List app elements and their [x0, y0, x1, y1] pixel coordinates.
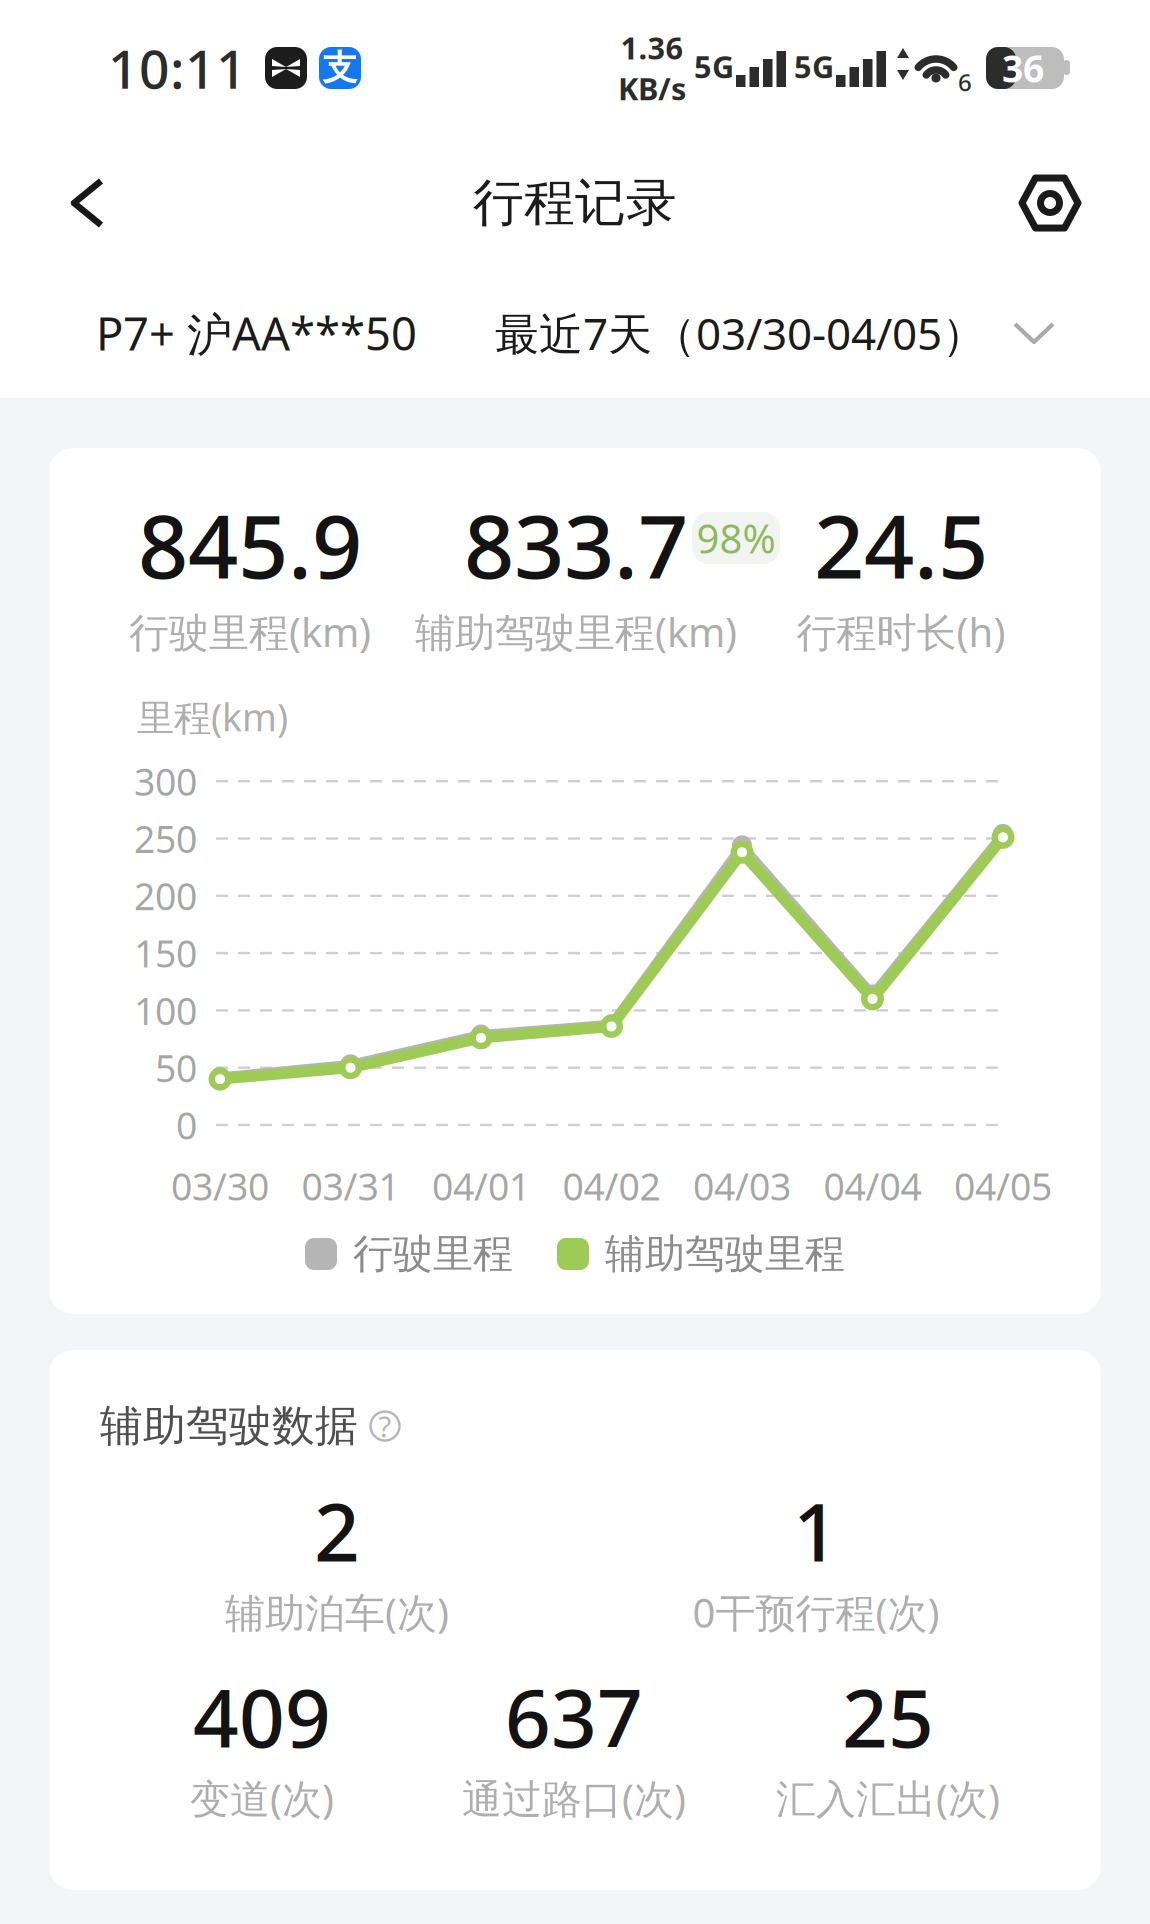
button[interactable]: 设置	[995, 148, 1105, 258]
staticText: 汇入汇出(次)	[776, 1772, 1000, 1825]
staticText: 6	[958, 66, 972, 98]
staticText: 150	[134, 928, 197, 978]
staticText: 24.5	[814, 486, 988, 603]
button[interactable]: 返回	[28, 148, 148, 258]
staticText: 5G	[694, 46, 734, 87]
staticText: 98%	[696, 511, 775, 564]
staticText: 行程时长(h)	[796, 605, 1005, 658]
staticText: 833.7	[464, 486, 688, 603]
staticText: 03/31	[301, 1161, 399, 1211]
staticText: 04/03	[693, 1161, 791, 1211]
staticText: 辅助泊车(次)	[225, 1586, 449, 1639]
staticText: 409	[193, 1663, 331, 1769]
staticText: 845.9	[138, 486, 362, 603]
staticText: 36	[1002, 43, 1044, 93]
staticText: 1	[793, 1477, 839, 1583]
staticText: 637	[505, 1663, 643, 1769]
staticText: P7+ 沪AA***50	[96, 303, 417, 363]
staticText: 50	[155, 1043, 197, 1092]
staticText: 250	[134, 814, 197, 863]
staticText: 25	[842, 1663, 934, 1769]
staticText: 辅助驾驶里程	[605, 1229, 845, 1278]
staticText: 里程(km)	[137, 692, 288, 742]
staticText: 5G	[794, 46, 834, 87]
staticText: 300	[134, 756, 197, 806]
staticText: 通过路口(次)	[462, 1772, 686, 1825]
staticText: 200	[134, 871, 197, 921]
staticText: 04/01	[432, 1161, 530, 1211]
button[interactable]: 最近7天（03/30-04/05）	[495, 278, 1135, 388]
staticText: 辅助驾驶里程(km)	[415, 605, 737, 658]
staticText: 辅助驾驶数据	[100, 1400, 358, 1452]
staticText: 行驶里程	[353, 1229, 513, 1278]
staticText: 10:11	[108, 33, 247, 103]
staticText: 最近7天（03/30-04/05）	[495, 304, 986, 362]
staticText: KB/s	[618, 68, 686, 109]
staticText: 行程记录	[473, 172, 677, 234]
staticText: 变道(次)	[190, 1772, 334, 1825]
staticText: 100	[134, 986, 197, 1035]
staticText: 04/02	[562, 1161, 660, 1211]
staticText: 1.36	[620, 27, 683, 68]
staticText: 2	[314, 1477, 360, 1583]
staticText: 行驶里程(km)	[129, 605, 371, 658]
staticText: 04/04	[823, 1161, 921, 1211]
staticText: 0干预行程(次)	[692, 1586, 939, 1639]
staticText: 0	[176, 1100, 197, 1150]
staticText: 支	[322, 47, 357, 89]
staticText: ?	[378, 1406, 391, 1445]
staticText: 03/30	[171, 1161, 269, 1211]
staticText: 04/05	[954, 1161, 1052, 1211]
button[interactable]: P7+ 沪AA***50	[0, 278, 426, 388]
